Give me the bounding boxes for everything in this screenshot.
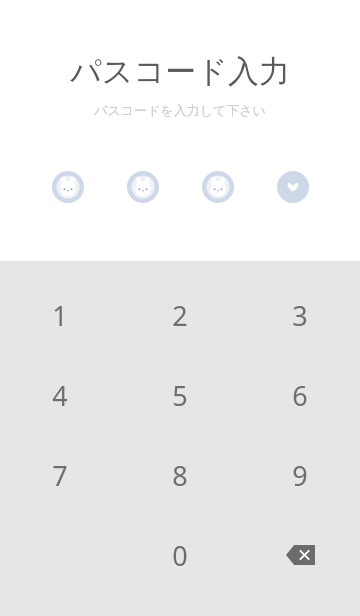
button[interactable]: 9 [240,435,360,515]
button[interactable]: 3 [240,275,360,355]
staticText: 7 [52,457,68,494]
button[interactable]: 2 [120,275,240,355]
staticText: 6 [292,377,308,414]
staticText: 4 [52,377,68,414]
button[interactable]: 6 [240,355,360,435]
staticText: 5 [172,377,188,414]
staticText: 9 [292,457,308,494]
button[interactable]: 1 [0,275,120,355]
button[interactable]: Delete [240,515,360,595]
staticText: 2 [172,297,188,334]
button[interactable]: 0 [120,515,240,595]
button[interactable]: 4 [0,355,120,435]
staticText: 3 [292,297,308,334]
staticText: 8 [172,457,188,494]
staticText: 1 [52,297,68,334]
staticText: パスコードを入力して下さい [94,102,266,118]
button[interactable]: 7 [0,435,120,515]
staticText: パスコード入力 [70,52,290,91]
button[interactable]: 5 [120,355,240,435]
staticText: 0 [172,537,188,574]
button[interactable]: 8 [120,435,240,515]
